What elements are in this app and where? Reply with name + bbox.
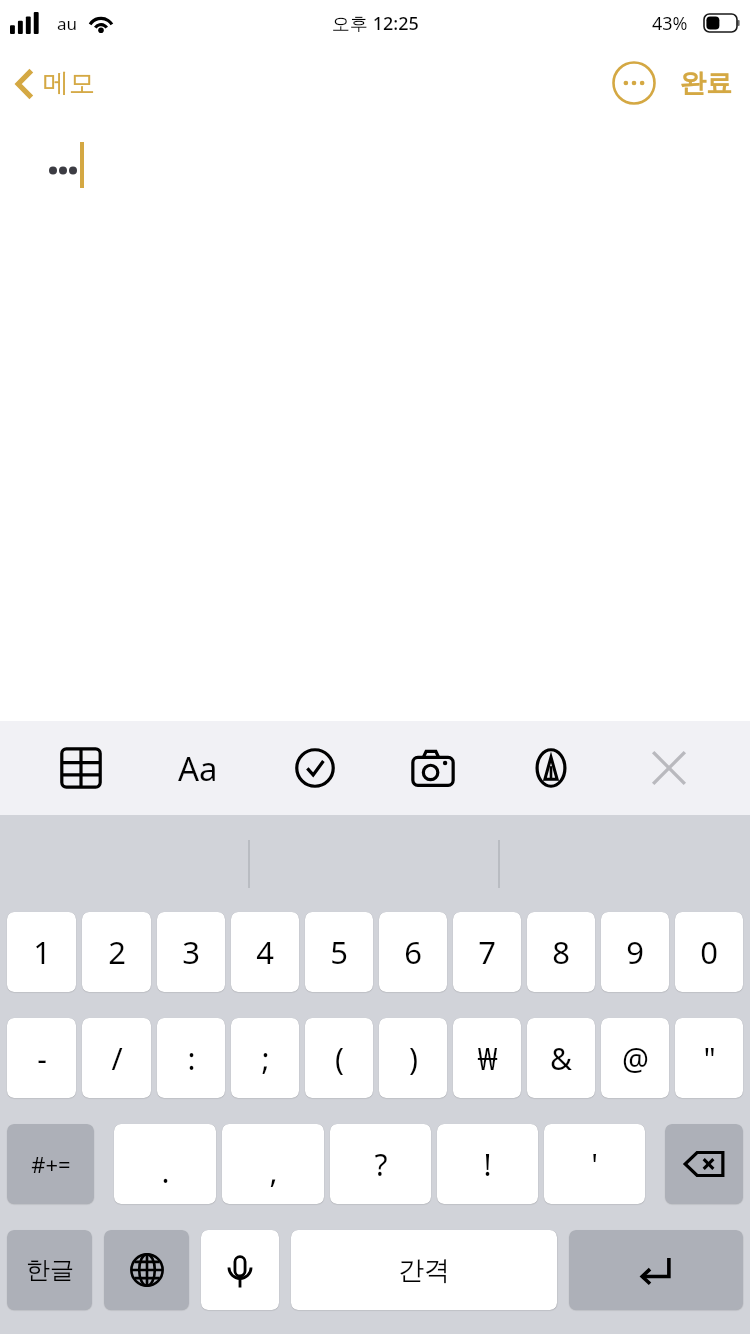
staticText: 5 bbox=[330, 931, 348, 973]
staticText: 간격 bbox=[398, 1254, 450, 1287]
button[interactable]: ? bbox=[330, 1124, 431, 1204]
staticText: @ bbox=[622, 1038, 649, 1079]
staticText: / bbox=[111, 1038, 123, 1079]
button[interactable]: 8 bbox=[527, 912, 595, 992]
button[interactable]: ; bbox=[231, 1018, 299, 1098]
staticText: ! bbox=[483, 1144, 492, 1185]
button[interactable]: Checklist bbox=[256, 721, 374, 815]
staticText: 43% bbox=[652, 11, 688, 36]
button[interactable]: ( bbox=[305, 1018, 373, 1098]
button[interactable]: Table bbox=[22, 721, 139, 815]
staticText: #+= bbox=[31, 1149, 71, 1179]
button[interactable]: - bbox=[7, 1018, 76, 1098]
staticText: ₩ bbox=[477, 1038, 498, 1079]
staticText: ? bbox=[374, 1144, 388, 1185]
button[interactable]: Camera bbox=[374, 721, 492, 815]
button[interactable]: ) bbox=[379, 1018, 447, 1098]
button[interactable]: 3 bbox=[157, 912, 225, 992]
button[interactable]: More options bbox=[606, 55, 662, 111]
button[interactable]: 0 bbox=[675, 912, 743, 992]
button[interactable]: 5 bbox=[305, 912, 373, 992]
button[interactable]: 6 bbox=[379, 912, 447, 992]
button[interactable]: Close keyboard bbox=[610, 721, 728, 815]
staticText: Aa bbox=[178, 746, 218, 791]
button[interactable]: 7 bbox=[453, 912, 521, 992]
staticText: 완료 bbox=[680, 67, 732, 100]
button[interactable]: " bbox=[675, 1018, 743, 1098]
button[interactable]: #+= bbox=[7, 1124, 94, 1204]
button[interactable]: ! bbox=[437, 1124, 538, 1204]
staticText: 0 bbox=[700, 931, 718, 973]
staticText: 4 bbox=[256, 931, 274, 973]
staticText: 2 bbox=[108, 931, 126, 973]
button[interactable]: & bbox=[527, 1018, 595, 1098]
staticText: ' bbox=[591, 1144, 598, 1185]
staticText: 7 bbox=[478, 931, 496, 973]
staticText: 1 bbox=[33, 931, 51, 973]
button[interactable]: 9 bbox=[601, 912, 669, 992]
button[interactable]: Aa bbox=[139, 721, 256, 815]
staticText: ; bbox=[261, 1038, 270, 1079]
button[interactable]: 한글 bbox=[7, 1230, 92, 1310]
staticText: ) bbox=[409, 1038, 418, 1079]
button[interactable]: Dictation bbox=[201, 1230, 279, 1310]
button[interactable]: Next keyboard bbox=[104, 1230, 189, 1310]
button[interactable]: . bbox=[114, 1124, 216, 1204]
button[interactable]: : bbox=[157, 1018, 225, 1098]
staticText: . bbox=[161, 1151, 170, 1192]
button[interactable]: , bbox=[222, 1124, 324, 1204]
staticText: 오후 12:25 bbox=[332, 11, 419, 36]
staticText: & bbox=[550, 1038, 572, 1079]
staticText: 6 bbox=[404, 931, 422, 973]
button[interactable]: ' bbox=[544, 1124, 645, 1204]
button[interactable]: ₩ bbox=[453, 1018, 521, 1098]
button[interactable]: 4 bbox=[231, 912, 299, 992]
button[interactable]: / bbox=[82, 1018, 151, 1098]
staticText: au bbox=[57, 12, 78, 35]
staticText: 한글 bbox=[26, 1255, 74, 1285]
staticText: ( bbox=[335, 1038, 344, 1079]
button[interactable]: Markup bbox=[492, 721, 610, 815]
button[interactable]: 2 bbox=[82, 912, 151, 992]
staticText: : bbox=[187, 1038, 196, 1079]
button[interactable]: 간격 bbox=[291, 1230, 557, 1310]
button[interactable]: 메모 bbox=[10, 61, 101, 106]
staticText: " bbox=[703, 1038, 716, 1079]
staticText: 8 bbox=[552, 931, 570, 973]
button[interactable]: 완료 bbox=[676, 61, 736, 106]
button[interactable]: Return bbox=[569, 1230, 743, 1310]
button[interactable]: 1 bbox=[7, 912, 76, 992]
staticText: 9 bbox=[626, 931, 644, 973]
staticText: - bbox=[37, 1038, 47, 1079]
staticText: 3 bbox=[182, 931, 200, 973]
button[interactable]: Delete bbox=[665, 1124, 743, 1204]
button[interactable]: @ bbox=[601, 1018, 669, 1098]
staticText: , bbox=[269, 1151, 278, 1192]
staticText: 메모 bbox=[43, 67, 95, 100]
